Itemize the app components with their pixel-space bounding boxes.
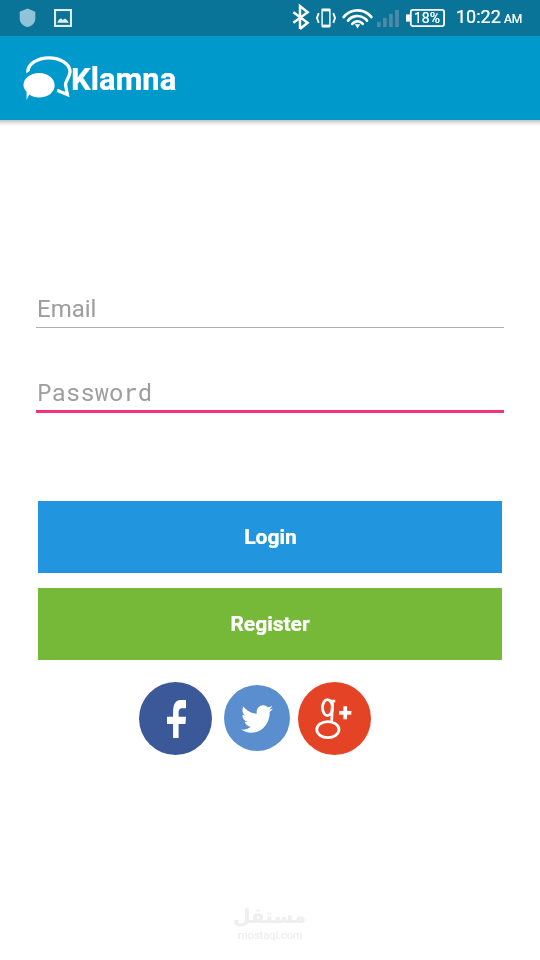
button[interactable]: Login: [38, 501, 502, 573]
button[interactable]: Sign in with Facebook: [139, 682, 212, 755]
button[interactable]: Sign in with Google Plus: [298, 682, 371, 755]
staticText: Klamna: [71, 61, 177, 97]
button[interactable]: Sign in with Twitter: [224, 685, 290, 751]
staticText: mostaql.com: [238, 929, 303, 942]
staticText: Register: [230, 612, 310, 637]
staticText: 10:22: [456, 6, 501, 27]
staticText: مستقل: [233, 904, 307, 927]
staticText: Password: [37, 376, 153, 408]
staticText: AM: [504, 12, 523, 26]
staticText: Login: [244, 525, 297, 550]
staticText: Email: [37, 295, 97, 323]
button[interactable]: Register: [38, 588, 502, 660]
button[interactable]: Email: [36, 295, 504, 328]
staticText: 18%: [414, 10, 440, 26]
button[interactable]: Password: [36, 376, 504, 413]
